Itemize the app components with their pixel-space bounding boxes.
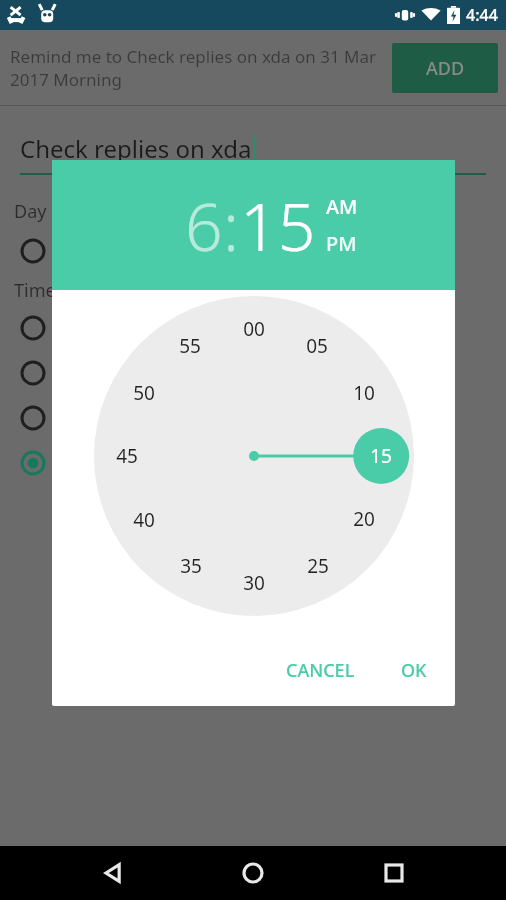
staticText: 15 xyxy=(240,180,316,270)
staticText: : xyxy=(223,180,240,270)
button[interactable]: 15 xyxy=(240,180,316,270)
staticText: 6 xyxy=(185,180,223,270)
staticText: OK xyxy=(401,658,427,683)
staticText: 45 xyxy=(116,443,138,469)
staticText: Time xyxy=(14,278,56,303)
button[interactable] xyxy=(0,232,506,270)
button[interactable]: ADD xyxy=(392,43,498,93)
staticText: 50 xyxy=(133,380,155,406)
staticText: 00 xyxy=(243,316,265,342)
staticText: PM xyxy=(326,230,357,257)
button[interactable]: 6 xyxy=(185,180,223,270)
button[interactable]: PM xyxy=(326,230,357,257)
staticText: Check replies on xda xyxy=(20,132,252,165)
button[interactable] xyxy=(0,354,506,392)
button[interactable] xyxy=(0,399,506,437)
staticText: 15 xyxy=(370,443,392,469)
staticText: 40 xyxy=(133,507,155,533)
button[interactable]: Home xyxy=(225,846,281,900)
staticText: 20 xyxy=(353,506,375,532)
staticText: 35 xyxy=(180,553,202,579)
button[interactable] xyxy=(94,296,414,616)
button[interactable]: Recent apps xyxy=(366,846,422,900)
staticText: ADD xyxy=(426,56,465,81)
staticText: 10 xyxy=(353,380,375,406)
staticText: 4:44 xyxy=(466,4,498,26)
staticText: 30 xyxy=(243,570,265,596)
button[interactable]: Back xyxy=(85,846,141,900)
staticText: 55 xyxy=(179,333,201,359)
staticText: CANCEL xyxy=(286,658,355,683)
button[interactable]: OK xyxy=(387,648,441,693)
staticText: 25 xyxy=(307,553,329,579)
button[interactable]: CANCEL xyxy=(272,648,369,693)
staticText: AM xyxy=(326,193,358,220)
staticText: 05 xyxy=(306,333,328,359)
staticText: Day xyxy=(14,199,47,224)
button[interactable] xyxy=(0,309,506,347)
staticText: Remind me to Check replies on xda on 31 … xyxy=(10,45,382,91)
button[interactable] xyxy=(0,444,506,482)
button[interactable]: AM xyxy=(326,193,358,220)
